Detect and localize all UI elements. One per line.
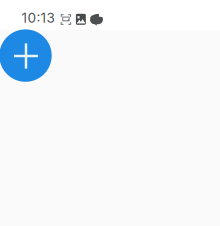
- button[interactable]: Add: [0, 29, 52, 82]
- staticText: 10:13: [22, 10, 55, 26]
